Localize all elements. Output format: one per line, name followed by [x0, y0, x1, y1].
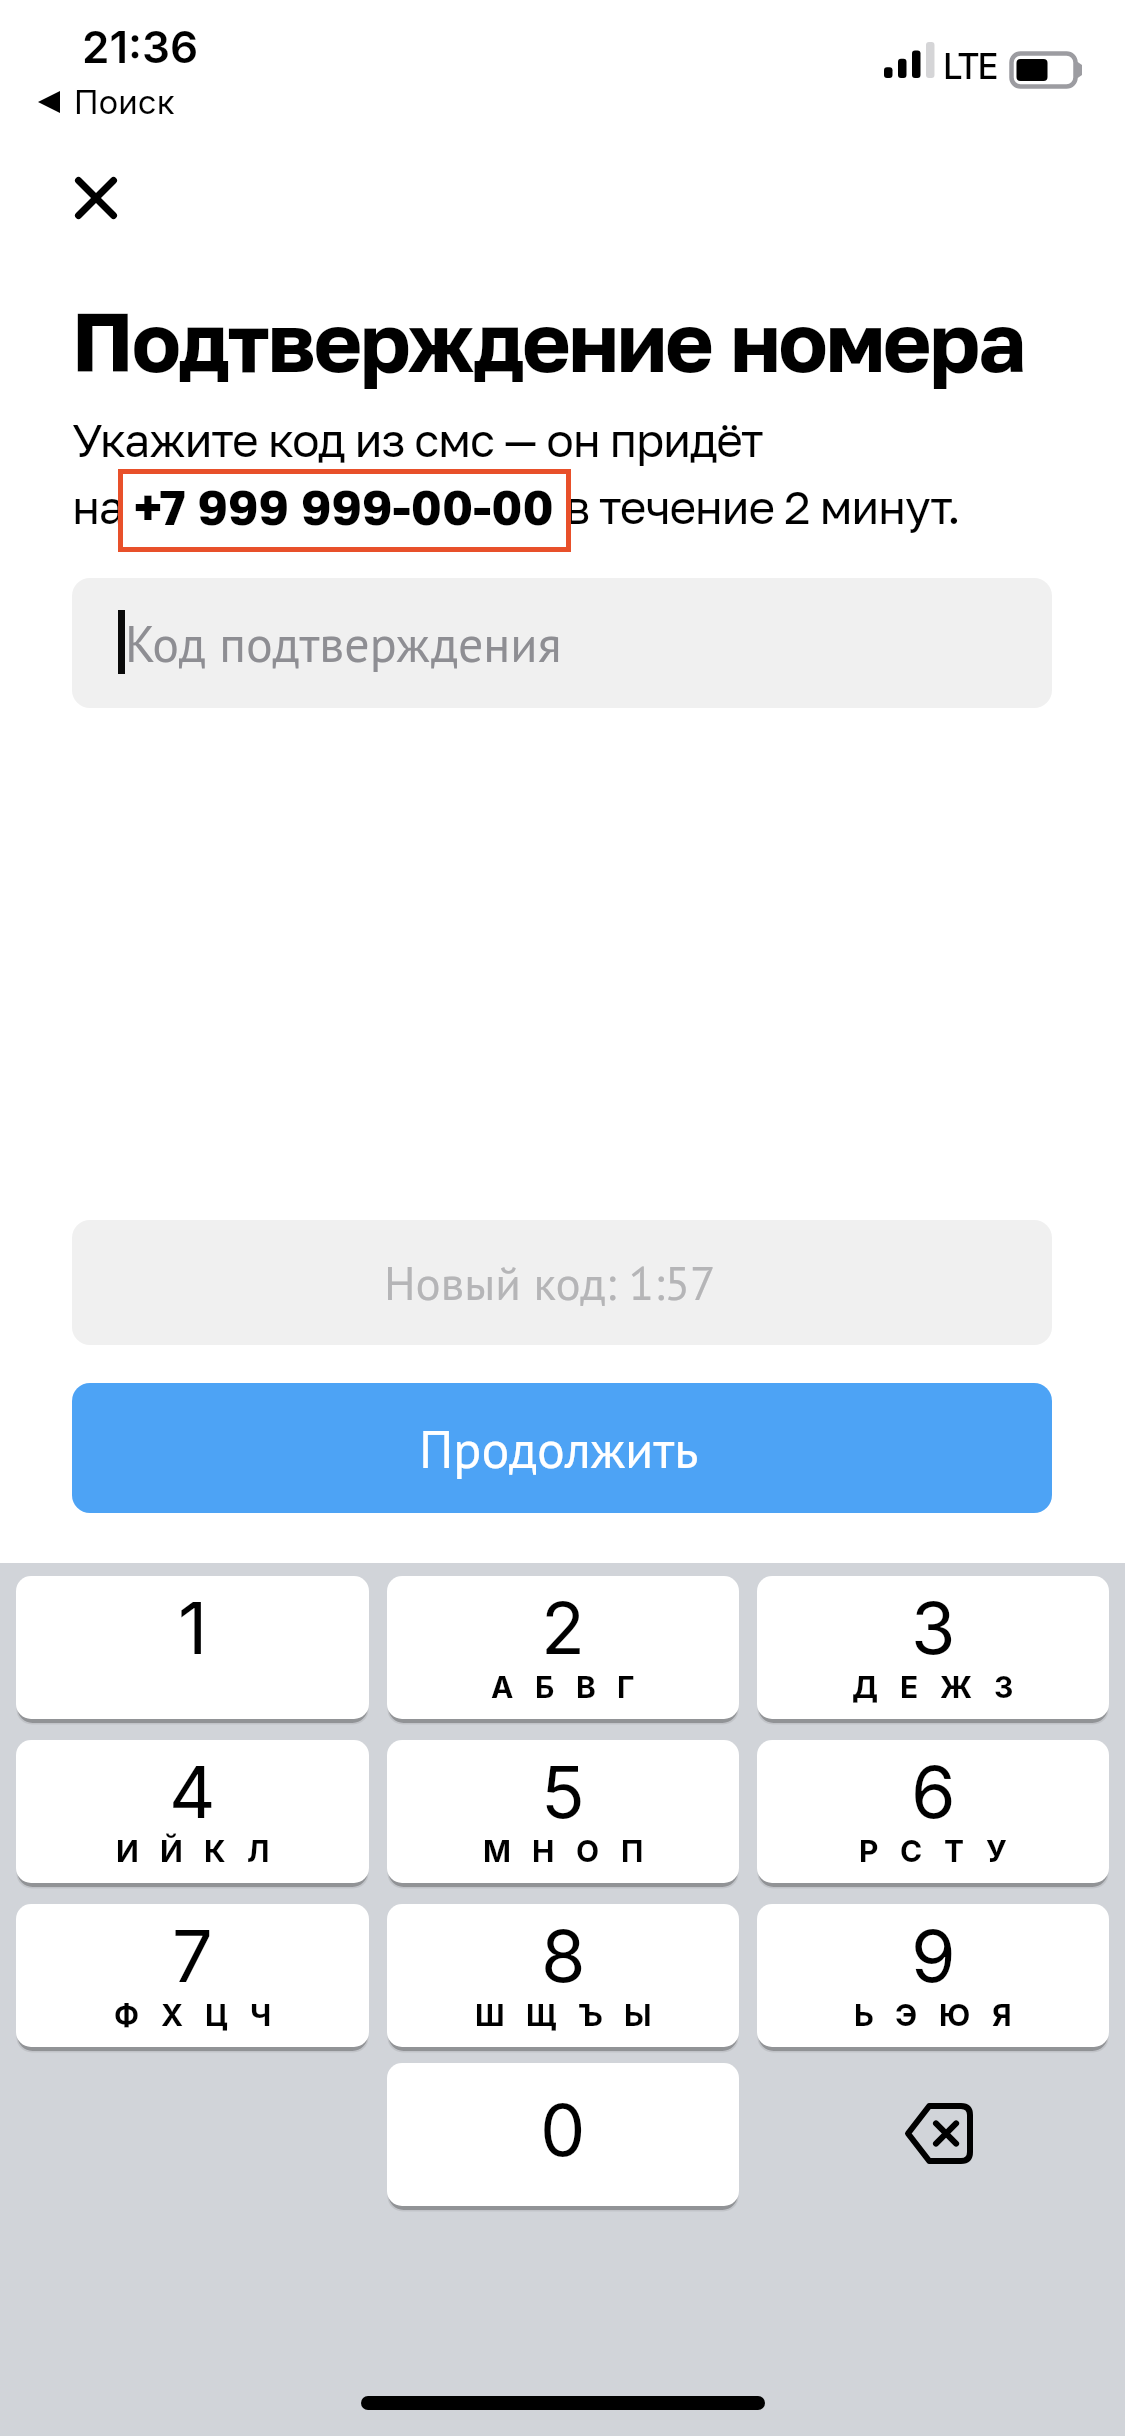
staticText: Е — [900, 1669, 919, 1705]
staticText: Ъ — [578, 1997, 603, 2033]
staticText: Укажите код из смс — он придёт — [72, 412, 763, 467]
staticText: Г — [617, 1669, 635, 1705]
button[interactable]: 9 — [757, 1904, 1109, 2047]
staticText: +7 999 999-00-00 — [134, 478, 554, 536]
staticText: М — [483, 1833, 511, 1869]
staticText: В — [576, 1669, 596, 1705]
staticText: Ч — [250, 1997, 272, 2033]
staticText: Л — [247, 1833, 270, 1869]
staticText: А — [491, 1669, 514, 1705]
staticText: Поиск — [74, 82, 175, 122]
staticText: 7 — [172, 1912, 213, 1999]
button[interactable]: 3 — [757, 1576, 1109, 1719]
button[interactable]: Close — [44, 146, 148, 250]
staticText: 4 — [169, 1748, 216, 1835]
staticText: Подтверждение номера — [72, 292, 1024, 390]
button[interactable]: Backspace — [757, 2063, 1109, 2203]
staticText: Ж — [940, 1669, 973, 1705]
staticText: К — [204, 1833, 226, 1869]
staticText: 0 — [540, 2086, 586, 2173]
staticText: Д — [852, 1669, 879, 1705]
staticText: Продолжить — [419, 1415, 699, 1482]
staticText: Й — [160, 1833, 183, 1869]
staticText: 1 — [178, 1584, 208, 1671]
staticText: Ь — [854, 1997, 874, 2033]
staticText: Ф — [114, 1997, 140, 2033]
staticText: Х — [161, 1997, 184, 2033]
staticText: И — [116, 1833, 139, 1869]
button[interactable]: 6 — [757, 1740, 1109, 1883]
button[interactable]: 0 — [387, 2063, 739, 2206]
staticText: 5 — [541, 1748, 585, 1835]
staticText: 9 — [911, 1912, 956, 1999]
staticText: Б — [535, 1669, 555, 1705]
button[interactable]: 8 — [387, 1904, 739, 2047]
staticText: Щ — [526, 1997, 557, 2033]
staticText: Н — [532, 1833, 555, 1869]
staticText: У — [986, 1833, 1007, 1869]
staticText: П — [621, 1833, 644, 1869]
staticText: О — [576, 1833, 600, 1869]
staticText: 8 — [541, 1912, 586, 1999]
button[interactable]: 4 — [16, 1740, 369, 1883]
staticText: Ю — [939, 1997, 971, 2033]
staticText: Код подтверждения — [125, 611, 562, 676]
staticText: LTE — [943, 45, 997, 87]
button[interactable]: 5 — [387, 1740, 739, 1883]
staticText: З — [994, 1669, 1014, 1705]
staticText: Ш — [475, 1997, 505, 2033]
staticText: 21:36 — [82, 20, 199, 73]
staticText: С — [900, 1833, 923, 1869]
staticText: Ц — [205, 1997, 229, 2033]
staticText: Р — [859, 1833, 879, 1869]
staticText: Новый код: 1:57 — [384, 1252, 716, 1313]
staticText: на — [72, 479, 134, 534]
button[interactable]: 2 — [387, 1576, 739, 1719]
button[interactable]: Код подтверждения — [72, 578, 1052, 708]
staticText: Ы — [624, 1997, 652, 2033]
button[interactable]: 7 — [16, 1904, 369, 2047]
staticText: Т — [944, 1833, 965, 1869]
staticText: Я — [992, 1997, 1012, 2033]
staticText: 3 — [911, 1584, 956, 1671]
staticText: 2 — [541, 1584, 585, 1671]
button[interactable]: Новый код: 1:57 — [72, 1220, 1052, 1345]
button[interactable]: Продолжить — [72, 1383, 1052, 1513]
staticText: Э — [895, 1997, 918, 2033]
staticText: в течение 2 минут. — [554, 479, 960, 534]
staticText: 6 — [911, 1748, 956, 1835]
button[interactable]: 1 — [16, 1576, 369, 1719]
